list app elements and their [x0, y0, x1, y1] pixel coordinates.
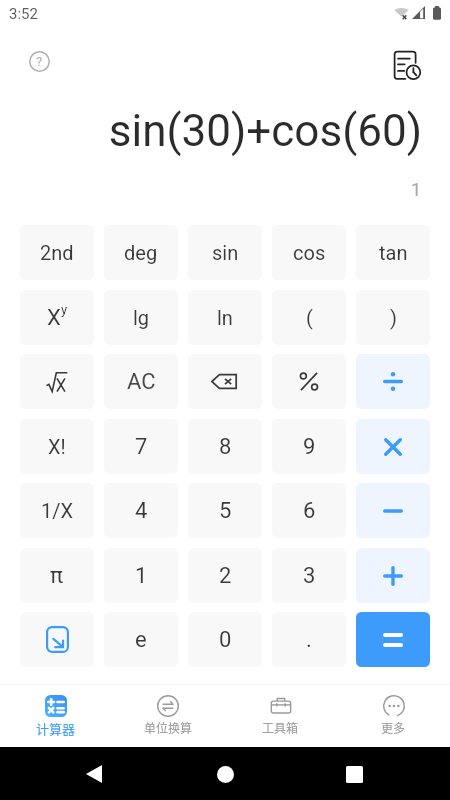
button[interactable] — [356, 419, 430, 474]
button[interactable]: History — [394, 51, 422, 79]
staticText: 单位换算 — [144, 719, 193, 736]
button[interactable] — [356, 483, 430, 538]
staticText: π — [50, 563, 64, 589]
button[interactable]: 9 — [272, 419, 346, 474]
button[interactable]: 4 — [104, 483, 178, 538]
button[interactable]: ) — [356, 290, 430, 345]
staticText: 计算器 — [36, 719, 76, 738]
staticText: X — [47, 305, 61, 331]
button[interactable]: π — [20, 548, 94, 603]
button[interactable]: cos — [272, 225, 346, 280]
button[interactable]: X — [20, 290, 94, 345]
staticText: sin — [212, 241, 239, 264]
staticText: 8 — [219, 434, 232, 460]
staticText: AC — [127, 369, 156, 395]
button[interactable]: tan — [356, 225, 430, 280]
staticText: 9 — [303, 434, 316, 460]
button[interactable]: Recents — [334, 754, 374, 794]
button[interactable] — [356, 612, 430, 667]
staticText: deg — [124, 241, 158, 264]
staticText: 工具箱 — [262, 719, 299, 736]
button[interactable] — [20, 612, 94, 667]
staticText: y — [61, 302, 68, 317]
button[interactable]: sin — [188, 225, 262, 280]
button[interactable]: 6 — [272, 483, 346, 538]
staticText: 3 — [303, 563, 316, 589]
button[interactable]: 5 — [188, 483, 262, 538]
button[interactable]: . — [272, 612, 346, 667]
button[interactable]: AC — [104, 354, 178, 409]
staticText: ? — [36, 54, 43, 69]
button[interactable] — [20, 354, 94, 409]
button[interactable]: Back — [74, 754, 114, 794]
button[interactable]: 1 — [104, 548, 178, 603]
button[interactable]: Home — [205, 754, 245, 794]
button[interactable]: 单位换算 — [112, 684, 224, 747]
button[interactable]: 工具箱 — [224, 684, 337, 747]
staticText: . — [306, 627, 312, 653]
button[interactable]: 计算器 — [0, 684, 112, 747]
staticText: 4 — [135, 498, 148, 524]
button[interactable]: e — [104, 612, 178, 667]
staticText: 1/X — [41, 499, 74, 522]
staticText: 0 — [219, 627, 232, 653]
button[interactable]: 2nd — [20, 225, 94, 280]
button[interactable]: 更多 — [337, 684, 450, 747]
button[interactable]: Help — [24, 46, 54, 76]
staticText: e — [135, 627, 147, 653]
staticText: cos — [293, 241, 326, 264]
staticText: 3:52 — [9, 5, 38, 23]
button[interactable] — [356, 548, 430, 603]
button[interactable]: 2 — [188, 548, 262, 603]
staticText: ) — [390, 306, 397, 329]
staticText: X! — [48, 435, 66, 458]
button[interactable]: 1/X — [20, 483, 94, 538]
button[interactable] — [272, 354, 346, 409]
staticText: sin(30)+cos(60) — [108, 105, 422, 157]
button[interactable]: ( — [272, 290, 346, 345]
staticText: 2 — [219, 563, 232, 589]
button[interactable]: 3 — [272, 548, 346, 603]
button[interactable]: 8 — [188, 419, 262, 474]
staticText: 1 — [135, 563, 148, 589]
button[interactable]: 7 — [104, 419, 178, 474]
staticText: lg — [133, 306, 150, 329]
staticText: 2nd — [40, 241, 74, 264]
staticText: tan — [379, 241, 408, 264]
staticText: 1 — [410, 179, 421, 200]
button[interactable]: 0 — [188, 612, 262, 667]
button[interactable]: X! — [20, 419, 94, 474]
staticText: ln — [217, 306, 233, 329]
staticText: ( — [306, 306, 313, 329]
button[interactable] — [188, 354, 262, 409]
button[interactable]: lg — [104, 290, 178, 345]
button[interactable]: deg — [104, 225, 178, 280]
staticText: 更多 — [381, 719, 406, 736]
staticText: 6 — [303, 498, 316, 524]
staticText: 7 — [135, 434, 148, 460]
button[interactable]: ln — [188, 290, 262, 345]
staticText: 5 — [219, 498, 232, 524]
button[interactable] — [356, 354, 430, 409]
